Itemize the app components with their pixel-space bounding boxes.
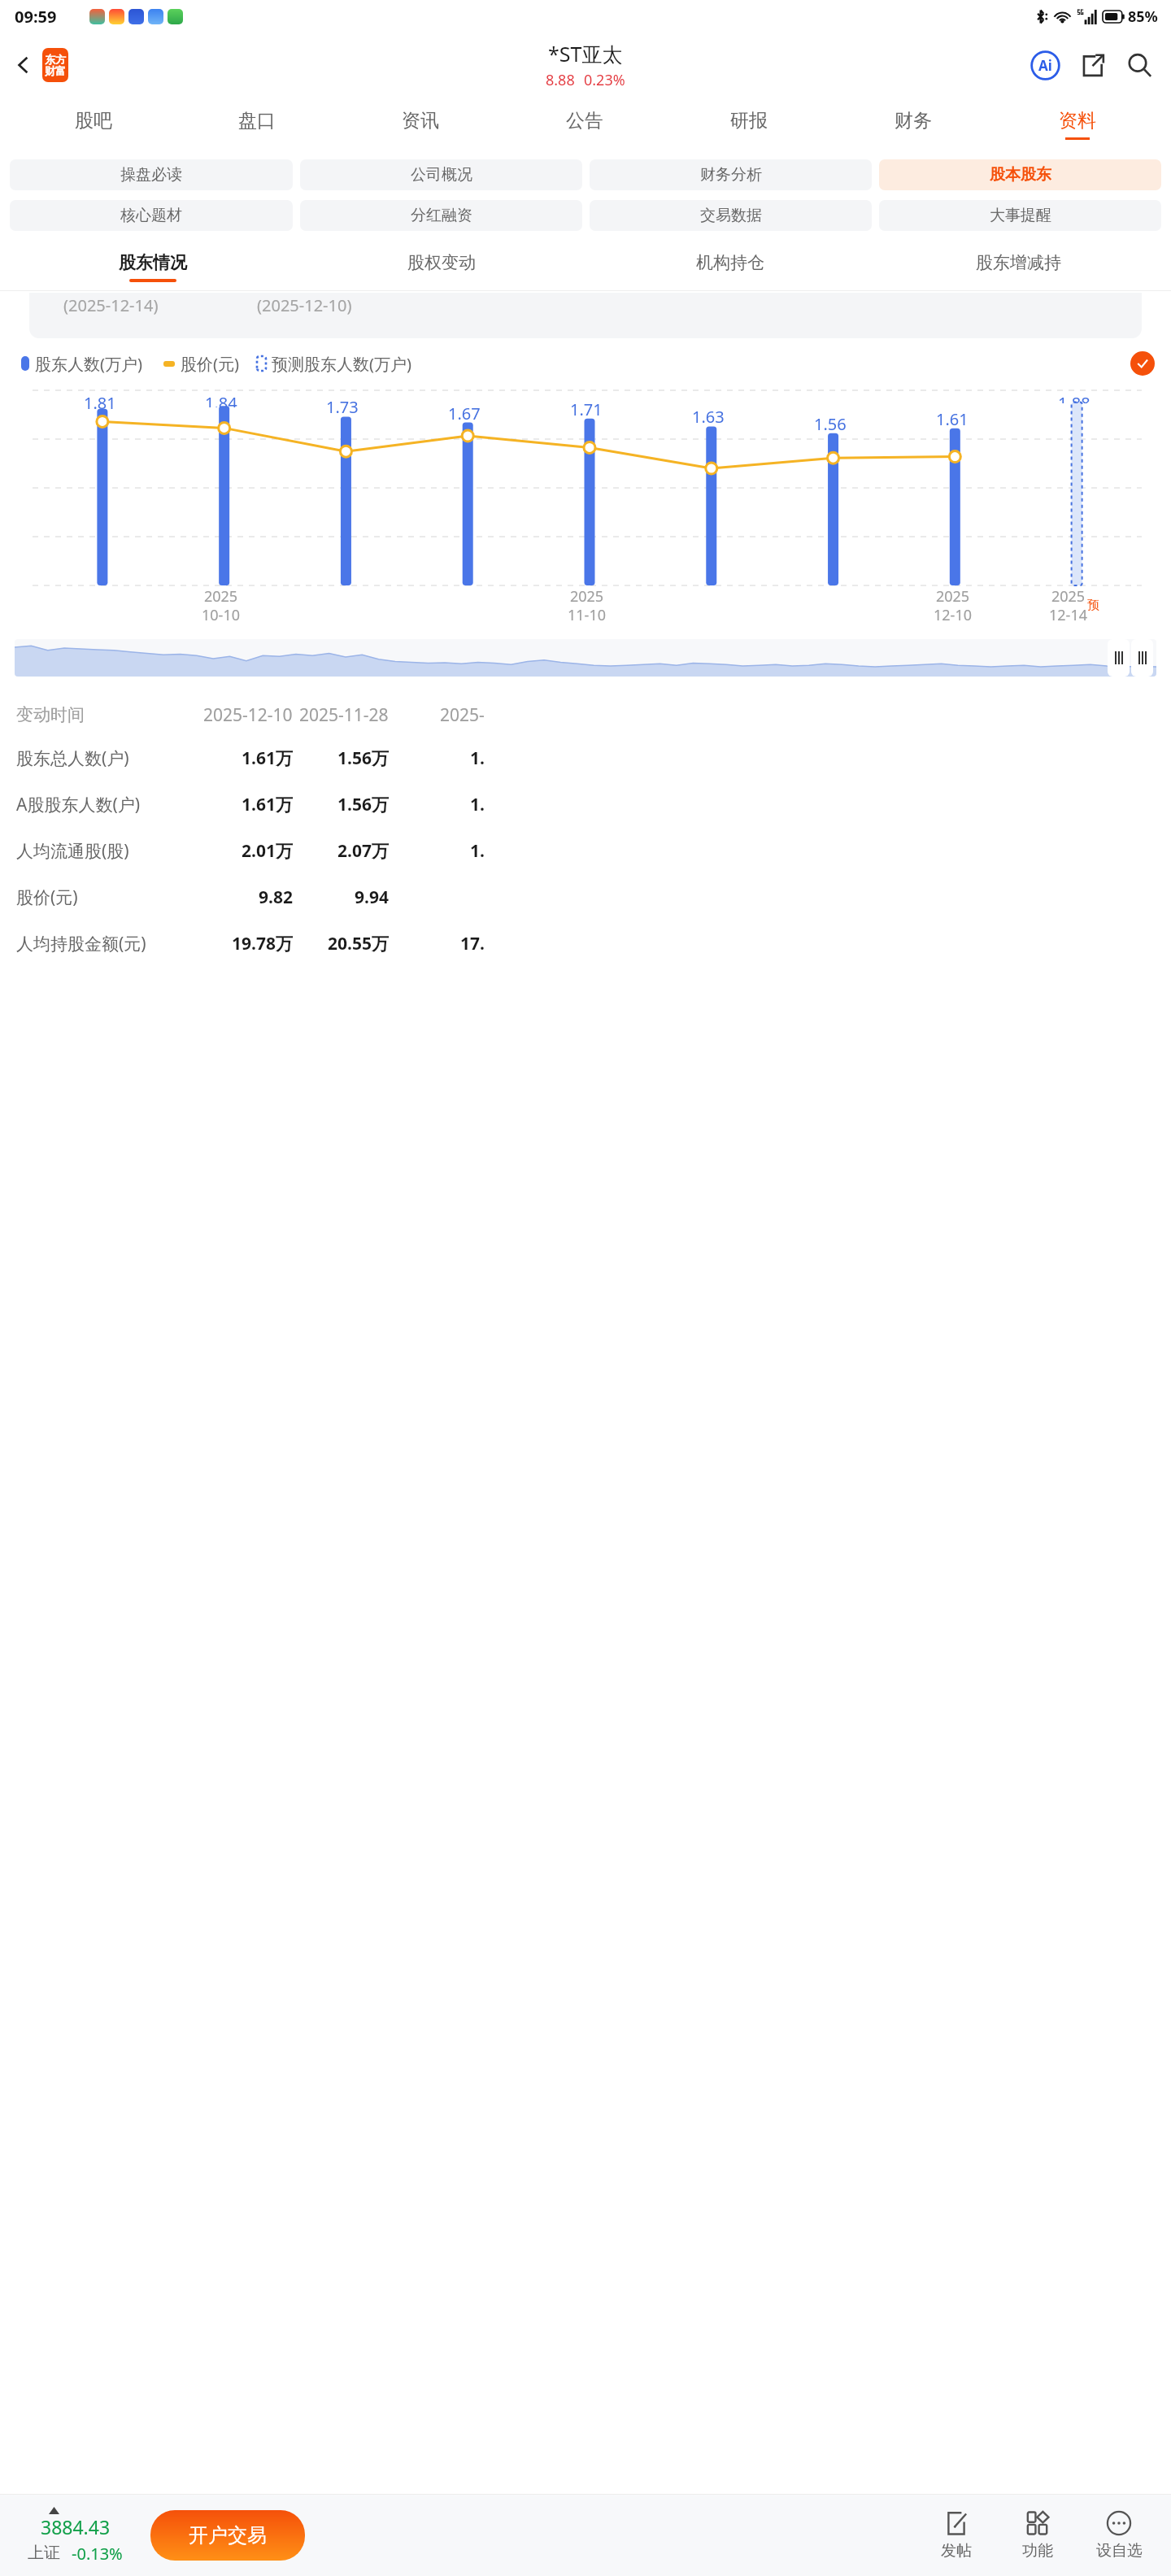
staticText: 2025 11-10	[568, 586, 606, 624]
staticText: 股东情况	[119, 252, 187, 273]
staticText: 8.88	[546, 70, 575, 90]
staticText: 19.78万	[232, 932, 293, 955]
staticText: 股东人数(万户)	[35, 353, 142, 375]
staticText: 研报	[730, 109, 768, 133]
staticText: 2.07万	[337, 839, 389, 863]
button[interactable]: 操盘必读	[10, 159, 293, 190]
button[interactable]: 分红融资	[300, 200, 582, 231]
staticText: 1.61万	[242, 793, 293, 816]
staticText: 9.82	[259, 885, 293, 909]
button[interactable]: 功能	[997, 2495, 1078, 2576]
staticText: 17.	[460, 932, 485, 955]
staticText: 机构持仓	[696, 252, 764, 273]
staticText: 预测股东人数(万户)	[272, 353, 411, 375]
staticText: 股吧	[75, 109, 112, 133]
staticText: *ST亚太	[548, 40, 623, 67]
staticText: 1.56	[814, 413, 847, 435]
staticText: 公司概况	[411, 165, 472, 185]
button[interactable]: AI助手	[1025, 45, 1065, 85]
staticText: 2025-12-10	[203, 703, 293, 727]
button[interactable]: 返回	[5, 46, 42, 84]
staticText: 财务	[895, 109, 932, 133]
staticText: 1.	[470, 746, 485, 770]
staticText: 1.63	[692, 406, 725, 428]
staticText: 盘口	[238, 109, 276, 133]
button[interactable]: 资料	[995, 97, 1160, 151]
staticText: 设自选	[1096, 2541, 1143, 2561]
button[interactable]: 股吧	[11, 97, 175, 151]
button[interactable]: 公告	[503, 97, 667, 151]
button[interactable]: 财务分析	[590, 159, 872, 190]
staticText: -0.13%	[72, 2543, 123, 2565]
staticText: 股价(元)	[181, 353, 239, 375]
staticText: 预	[1087, 598, 1099, 613]
staticText: 1.81	[84, 392, 116, 411]
staticText: 20.55万	[328, 932, 389, 955]
button[interactable]: 财务	[831, 97, 995, 151]
button[interactable]: 公司概况	[300, 159, 582, 190]
staticText: 股本股东	[990, 165, 1051, 185]
staticText: 1.56万	[337, 793, 389, 816]
staticText: 人均流通股(股)	[16, 839, 129, 863]
staticText: 交易数据	[700, 206, 762, 225]
staticText: 9.94	[355, 885, 389, 909]
staticText: 1.84	[205, 392, 237, 407]
staticText: 09:59	[15, 6, 57, 28]
button[interactable]: 开户交易	[150, 2510, 305, 2561]
staticText: 公告	[566, 109, 603, 133]
staticText: 85%	[1128, 7, 1158, 27]
staticText: 1.73	[326, 396, 359, 418]
staticText: 1.71	[570, 398, 603, 420]
staticText: 3884.43	[41, 2514, 111, 2539]
staticText: 1.61	[936, 408, 969, 430]
button[interactable]: 研报	[667, 97, 831, 151]
staticText: 发帖	[941, 2541, 972, 2561]
staticText: A股股东人数(户)	[16, 793, 141, 816]
staticText: 2025-11-28	[299, 703, 389, 727]
staticText: 人均持股金额(元)	[16, 932, 146, 955]
staticText: 1.67	[448, 402, 481, 424]
button[interactable]: 交易数据	[590, 200, 872, 231]
button[interactable]: 确认	[1130, 351, 1155, 376]
button[interactable]: 调整区间	[15, 639, 1156, 677]
staticText: 功能	[1022, 2541, 1053, 2561]
button[interactable]: 调整区间	[1108, 639, 1130, 677]
button[interactable]: 分享	[1072, 45, 1112, 85]
staticText: 2025 12-14	[1049, 586, 1087, 624]
button[interactable]: 发帖	[916, 2495, 997, 2576]
button[interactable]: 核心题材	[10, 200, 293, 231]
staticText: 股价(元)	[16, 885, 78, 909]
button[interactable]: 股权变动	[297, 242, 585, 291]
staticText: 1.	[470, 839, 485, 863]
staticText: 2025 12-10	[934, 586, 972, 624]
staticText: (2025-12-10)	[257, 294, 352, 316]
staticText: 1.56万	[337, 746, 389, 770]
staticText: 变动时间	[16, 704, 85, 725]
button[interactable]: 机构持仓	[585, 242, 874, 291]
staticText: 东方 财富	[45, 53, 66, 78]
staticText: 股东增减持	[976, 252, 1061, 273]
staticText: 0.23%	[584, 70, 625, 90]
button[interactable]: 大事提醒	[879, 200, 1161, 231]
staticText: 上证	[28, 2543, 60, 2563]
staticText: 1.	[470, 793, 485, 816]
staticText: 财务分析	[700, 165, 762, 185]
staticText: 资讯	[402, 109, 439, 133]
staticText: 操盘必读	[120, 165, 182, 185]
button[interactable]: 盘口	[175, 97, 338, 151]
button[interactable]: 调整区间	[1131, 639, 1153, 677]
button[interactable]: 股东情况	[8, 242, 297, 291]
button[interactable]: 设自选	[1078, 2495, 1160, 2576]
button[interactable]: 资讯	[338, 97, 503, 151]
button[interactable]: 股本股东	[879, 159, 1161, 190]
staticText: 资料	[1059, 109, 1096, 133]
button[interactable]: 3884.43	[0, 2507, 150, 2565]
staticText: 2025-	[440, 703, 485, 727]
staticText: 2025 10-10	[202, 586, 240, 624]
button[interactable]: 股东增减持	[874, 242, 1163, 291]
button[interactable]: 搜索	[1119, 45, 1160, 85]
staticText: 1.61万	[242, 746, 293, 770]
staticText: 1.88	[1058, 392, 1090, 403]
button[interactable]: 东方财富	[42, 48, 68, 82]
staticText: Ai	[1038, 56, 1052, 75]
